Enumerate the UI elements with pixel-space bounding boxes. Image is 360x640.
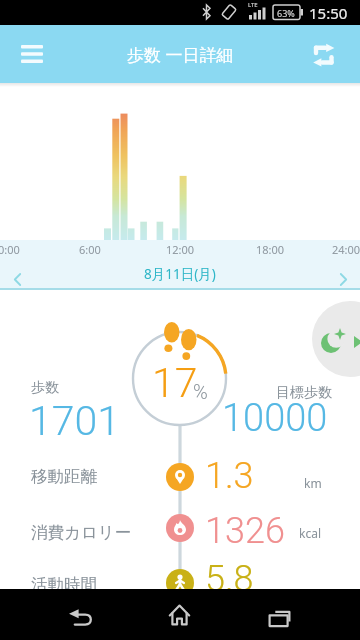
button[interactable] bbox=[46, 589, 116, 640]
button[interactable] bbox=[330, 267, 356, 291]
staticText: 消費カロリー bbox=[31, 522, 132, 543]
staticText: 5.8 bbox=[205, 558, 254, 600]
button[interactable] bbox=[0, 505, 360, 551]
staticText: 1701 bbox=[29, 397, 120, 445]
button[interactable] bbox=[12, 34, 52, 74]
staticText: 24:00 bbox=[332, 242, 360, 257]
staticText: 18:00 bbox=[256, 242, 285, 257]
staticText: LTE bbox=[248, 1, 258, 9]
staticText: 17 bbox=[152, 359, 198, 407]
staticText: 8月11日(月) bbox=[0, 265, 360, 283]
staticText: 目標歩数 bbox=[276, 384, 332, 402]
button[interactable] bbox=[302, 34, 348, 76]
staticText: 移動距離 bbox=[31, 466, 97, 487]
button[interactable] bbox=[0, 454, 360, 500]
button[interactable] bbox=[243, 589, 313, 640]
staticText: km bbox=[304, 475, 322, 491]
button[interactable] bbox=[4, 267, 30, 291]
button[interactable] bbox=[145, 589, 215, 640]
staticText: 1.3 bbox=[205, 455, 254, 497]
staticText: 0:00 bbox=[0, 242, 20, 257]
staticText: 15:50 bbox=[309, 3, 348, 23]
staticText: 10000 bbox=[222, 396, 328, 441]
staticText: % bbox=[193, 380, 208, 403]
staticText: 歩数 bbox=[31, 379, 59, 397]
staticText: kcal bbox=[299, 525, 321, 541]
staticText: 12:00 bbox=[166, 242, 195, 257]
staticText: 6:00 bbox=[79, 242, 101, 257]
button[interactable] bbox=[0, 560, 360, 606]
staticText: 63% bbox=[277, 7, 295, 19]
staticText: 歩数 一日詳細 bbox=[127, 43, 234, 66]
staticText: 活動時間 bbox=[31, 574, 97, 595]
staticText: 1326 bbox=[205, 510, 285, 552]
button[interactable] bbox=[312, 301, 360, 377]
